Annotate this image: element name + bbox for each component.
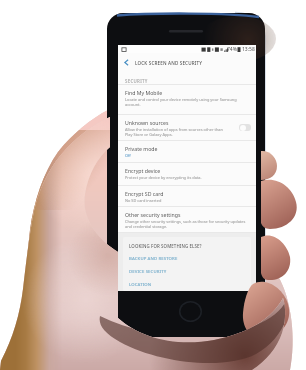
staticText: LOCATION: [129, 281, 152, 287]
staticText: Change other security settings, such as …: [125, 219, 246, 229]
staticText: Allow the installation of apps from sour…: [125, 127, 223, 137]
staticText: Unknown sources: [125, 119, 169, 126]
staticText: LOCK SCREEN AND SECURITY: [135, 60, 203, 66]
staticText: No SD card inserted: [125, 198, 162, 203]
staticText: SECURITY: [125, 78, 148, 84]
button[interactable]: Other security settings: [118, 207, 256, 232]
button[interactable]: Encrypt device: [118, 163, 256, 185]
staticText: Encrypt device: [125, 167, 161, 174]
button[interactable]: Unknown sources toggle: [239, 124, 251, 131]
button[interactable]: LOCATION: [129, 281, 251, 287]
button[interactable]: Find My Mobile: [118, 85, 256, 114]
staticText: DEVICE SECURITY: [129, 268, 167, 274]
staticText: Private mode: [125, 145, 158, 152]
staticText: Find My Mobile: [125, 89, 163, 96]
button[interactable]: DEVICE SECURITY: [129, 268, 251, 274]
staticText: 13:58: [242, 46, 255, 53]
button[interactable]: Back: [118, 53, 256, 72]
staticText: 74%: [227, 46, 237, 53]
staticText: Encrypt SD card: [125, 190, 164, 197]
staticText: Other security settings: [125, 211, 181, 218]
staticText: LOOKING FOR SOMETHING ELSE?: [129, 243, 202, 249]
staticText: Off: [125, 153, 131, 158]
button[interactable]: Encrypt SD card: [118, 186, 256, 206]
button[interactable]: BACKUP AND RESTORE: [129, 255, 251, 261]
staticText: Locate and control your device remotely …: [125, 97, 237, 107]
button[interactable]: Unknown sources: [118, 115, 256, 140]
staticText: BACKUP AND RESTORE: [129, 255, 178, 261]
button[interactable]: Back: [118, 53, 135, 72]
staticText: Protect your device by encrypting its da…: [125, 175, 202, 180]
button[interactable]: Private mode: [118, 141, 256, 162]
